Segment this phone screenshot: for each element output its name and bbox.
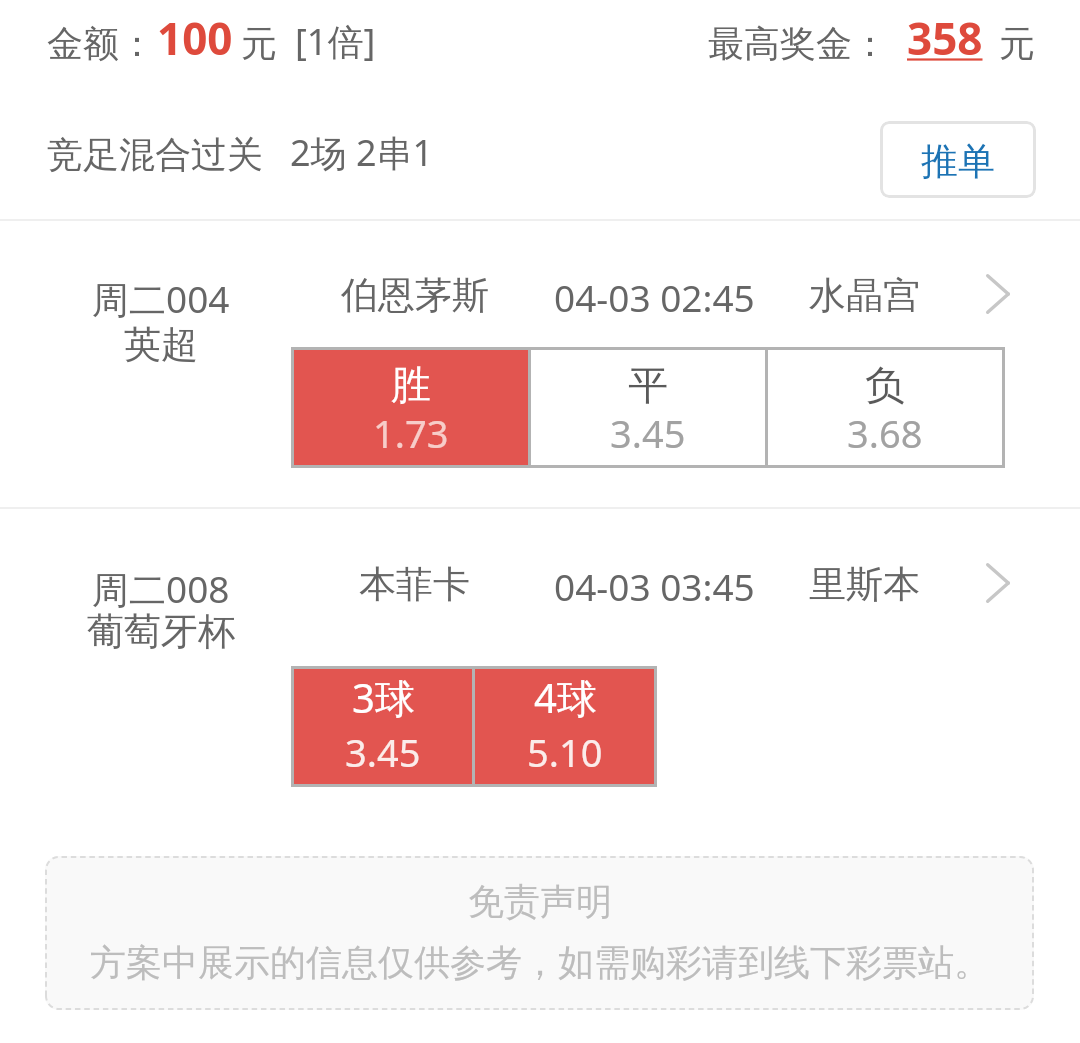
button[interactable]: 平 <box>531 350 765 465</box>
staticText: 水晶宫 <box>809 272 920 319</box>
staticText: 负 <box>865 360 905 410</box>
staticText: 葡萄牙杯 <box>87 608 235 655</box>
staticText: 5.10 <box>527 726 603 778</box>
staticText: 3球 <box>352 670 415 725</box>
staticText: 最高奖金： <box>708 21 888 66</box>
staticText: 1.73 <box>373 407 449 459</box>
staticText: 推单 <box>921 138 995 185</box>
staticText: 伯恩茅斯 <box>341 272 489 319</box>
button[interactable]: 3球 <box>294 669 472 784</box>
staticText: 本菲卡 <box>359 561 470 608</box>
staticText: 方案中展示的信息仅供参考，如需购彩请到线下彩票站。 <box>90 940 990 985</box>
button[interactable]: 推单 <box>880 121 1036 198</box>
staticText: 3.68 <box>847 407 923 459</box>
staticText: [1倍] <box>295 17 376 66</box>
staticText: 英超 <box>124 321 198 368</box>
staticText: 免责声明 <box>468 879 612 924</box>
button[interactable]: 负 <box>768 350 1002 465</box>
staticText: 里斯本 <box>809 561 920 608</box>
staticText: 竞足混合过关 <box>47 132 263 177</box>
staticText: 元 <box>999 21 1035 66</box>
staticText: 元 <box>241 21 277 66</box>
button[interactable]: Match details <box>972 562 1022 608</box>
staticText: 周二004 <box>92 273 230 324</box>
staticText: 04-03 03:45 <box>554 561 755 611</box>
button[interactable]: 4球 <box>475 669 654 784</box>
button[interactable] <box>0 221 1080 507</box>
staticText: 100 <box>157 8 233 68</box>
staticText: 4球 <box>534 670 597 725</box>
staticText: 平 <box>628 360 668 410</box>
staticText: 04-03 02:45 <box>554 272 755 322</box>
staticText: 358 <box>907 8 983 68</box>
staticText: 3.45 <box>610 407 686 459</box>
button[interactable]: Match details <box>972 273 1022 319</box>
button[interactable] <box>0 509 1080 809</box>
staticText: 胜 <box>391 360 431 410</box>
staticText: 金额： <box>47 21 155 66</box>
staticText: 周二008 <box>92 563 230 614</box>
button[interactable]: 胜 <box>294 350 528 465</box>
staticText: 2场 2串1 <box>290 128 434 177</box>
staticText: 3.45 <box>345 726 421 778</box>
